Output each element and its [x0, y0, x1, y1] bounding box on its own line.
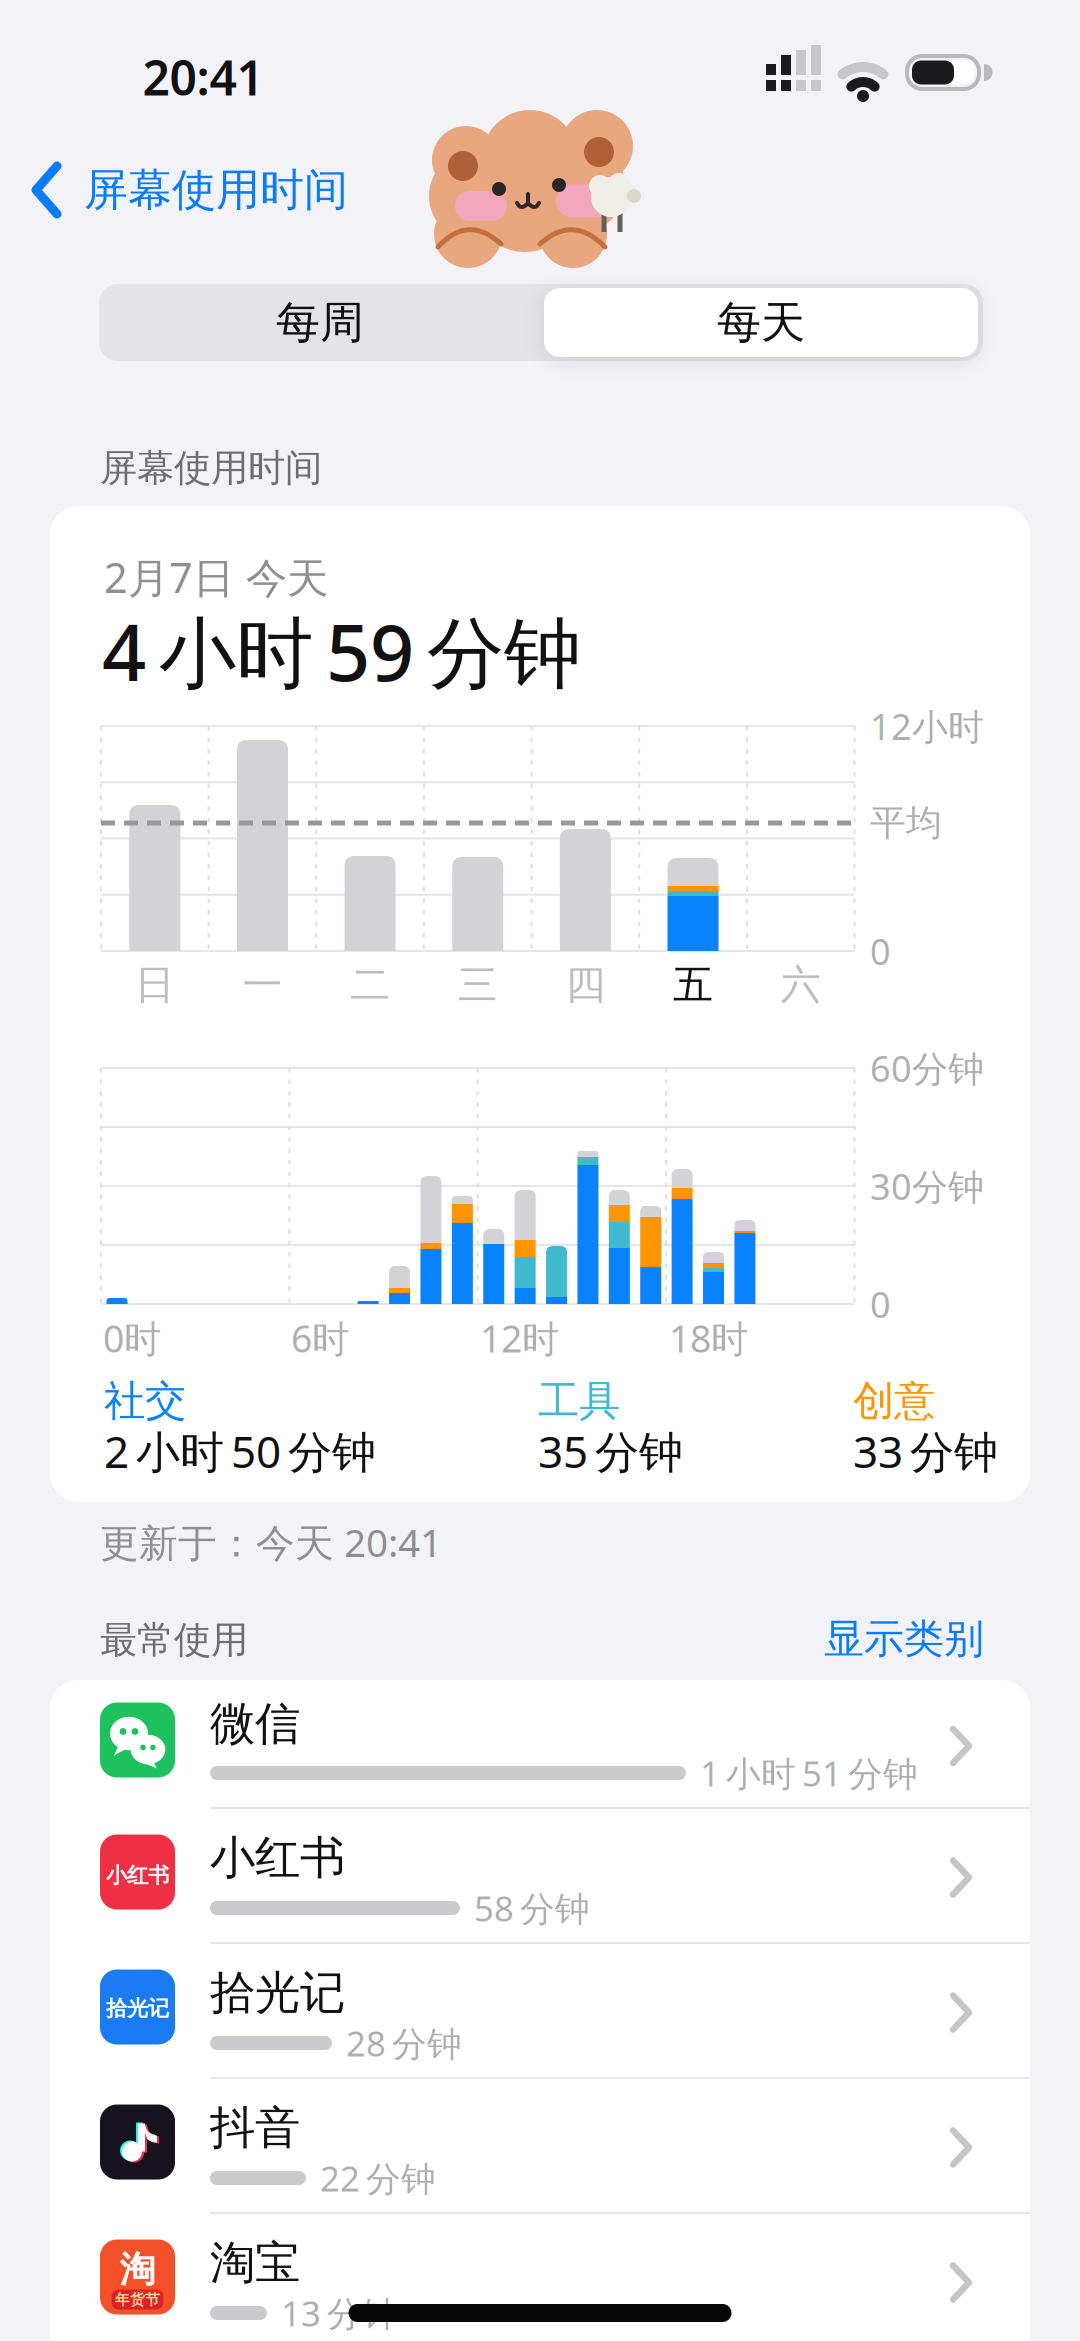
staticText: 拾光记 — [106, 1995, 169, 2022]
staticText: 60分钟 — [870, 1044, 984, 1092]
staticText: 淘 — [119, 2247, 155, 2292]
staticText: 4 小时 59 分钟 — [102, 600, 581, 702]
staticText: 五 — [673, 960, 713, 1009]
staticText: 二 — [350, 960, 390, 1009]
button[interactable]: 小红书 — [50, 1808, 1030, 1943]
staticText: 微信 — [210, 1696, 300, 1752]
staticText: 13 分钟 — [281, 2290, 397, 2336]
staticText: 22 分钟 — [320, 2155, 436, 2201]
button[interactable]: 返回 屏幕使用时间 — [24, 150, 374, 230]
staticText: 35 分钟 — [538, 1422, 683, 1480]
staticText: 一 — [242, 960, 282, 1009]
button[interactable]: 拾光记 — [50, 1943, 1030, 2078]
staticText: 显示类别 — [824, 1614, 984, 1663]
staticText: 6时 — [291, 1313, 349, 1363]
staticText: 淘宝 — [210, 2235, 300, 2291]
staticText: 创意 — [853, 1376, 935, 1426]
staticText: 小红书 — [210, 1830, 345, 1886]
staticText: 三 — [458, 960, 498, 1009]
staticText: 工具 — [538, 1376, 620, 1426]
button[interactable]: 每周 — [100, 284, 540, 361]
button[interactable]: 每天 — [541, 284, 981, 361]
staticText: 最常使用 — [100, 1617, 248, 1663]
staticText: 每周 — [276, 295, 364, 349]
staticText: 0时 — [103, 1313, 161, 1363]
staticText: 0 — [870, 1280, 891, 1328]
staticText: 屏幕使用时间 — [84, 163, 348, 217]
staticText: 58 分钟 — [474, 1885, 590, 1931]
staticText: 0 — [870, 927, 891, 975]
button[interactable]: 显示类别 — [684, 1604, 984, 1674]
staticText: 平均 — [870, 801, 942, 845]
staticText: 30分钟 — [870, 1162, 984, 1210]
staticText: 社交 — [104, 1376, 186, 1426]
staticText: 六 — [781, 960, 821, 1009]
staticText: 屏幕使用时间 — [100, 445, 322, 491]
staticText: 小红书 — [106, 1862, 169, 1889]
staticText: 2 小时 50 分钟 — [104, 1422, 376, 1480]
staticText: 1 小时 51 分钟 — [700, 1750, 918, 1796]
staticText: 拾光记 — [210, 1965, 345, 2021]
staticText: 更新于：今天 20:41 — [100, 1516, 442, 1568]
staticText: 12时 — [480, 1313, 559, 1363]
staticText: 20:41 — [142, 45, 263, 109]
staticText: 日 — [135, 960, 175, 1009]
button[interactable]: 淘 — [50, 2213, 1030, 2341]
staticText: 每天 — [717, 295, 805, 349]
staticText: 28 分钟 — [346, 2020, 462, 2066]
staticText: 12小时 — [870, 702, 984, 750]
staticText: 四 — [565, 960, 605, 1009]
button[interactable]: 微信 — [50, 1680, 1030, 1808]
staticText: 33 分钟 — [853, 1422, 998, 1480]
staticText: 年货节 — [115, 2290, 160, 2308]
staticText: 2月7日 今天 — [104, 550, 328, 604]
button[interactable]: 抖音 — [50, 2078, 1030, 2213]
staticText: 18时 — [669, 1313, 748, 1363]
staticText: 抖音 — [210, 2100, 300, 2156]
